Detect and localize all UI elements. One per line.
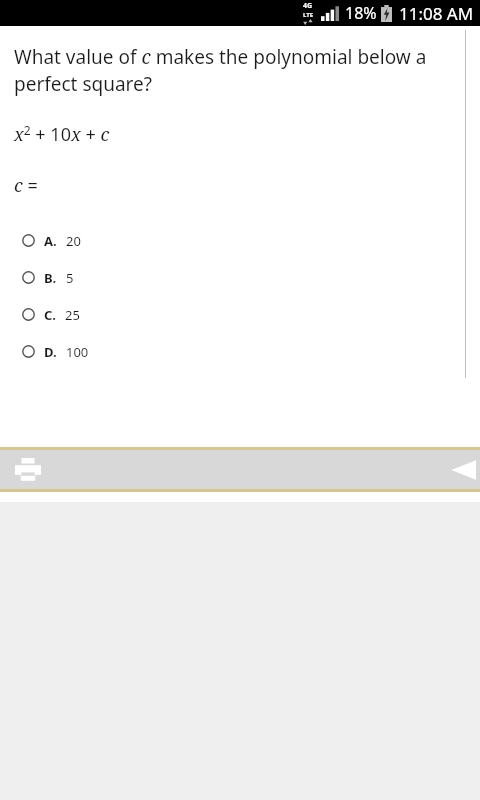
button[interactable]: D. <box>0 333 480 370</box>
staticText: C. <box>44 306 56 324</box>
button[interactable]: A. <box>0 222 480 259</box>
staticText: c = <box>14 173 38 198</box>
staticText: A. <box>44 232 57 250</box>
staticText: 20 <box>66 232 81 250</box>
staticText: What value of c makes the polynomial bel… <box>14 44 458 97</box>
staticText: 4G <box>303 1 313 11</box>
staticText: 100 <box>66 343 89 361</box>
staticText: 11:08 AM <box>399 2 474 25</box>
staticText: 18% <box>345 2 377 24</box>
button[interactable]: Next <box>446 450 480 489</box>
staticText: x2 + 10x + c <box>14 122 110 147</box>
button[interactable]: Print <box>8 450 48 489</box>
staticText: LTE <box>303 11 314 19</box>
button[interactable]: B. <box>0 259 480 296</box>
staticText: 25 <box>65 306 80 324</box>
staticText: B. <box>44 269 57 287</box>
button[interactable]: C. <box>0 296 480 333</box>
staticText: D. <box>44 343 57 361</box>
staticText: 5 <box>66 269 74 287</box>
